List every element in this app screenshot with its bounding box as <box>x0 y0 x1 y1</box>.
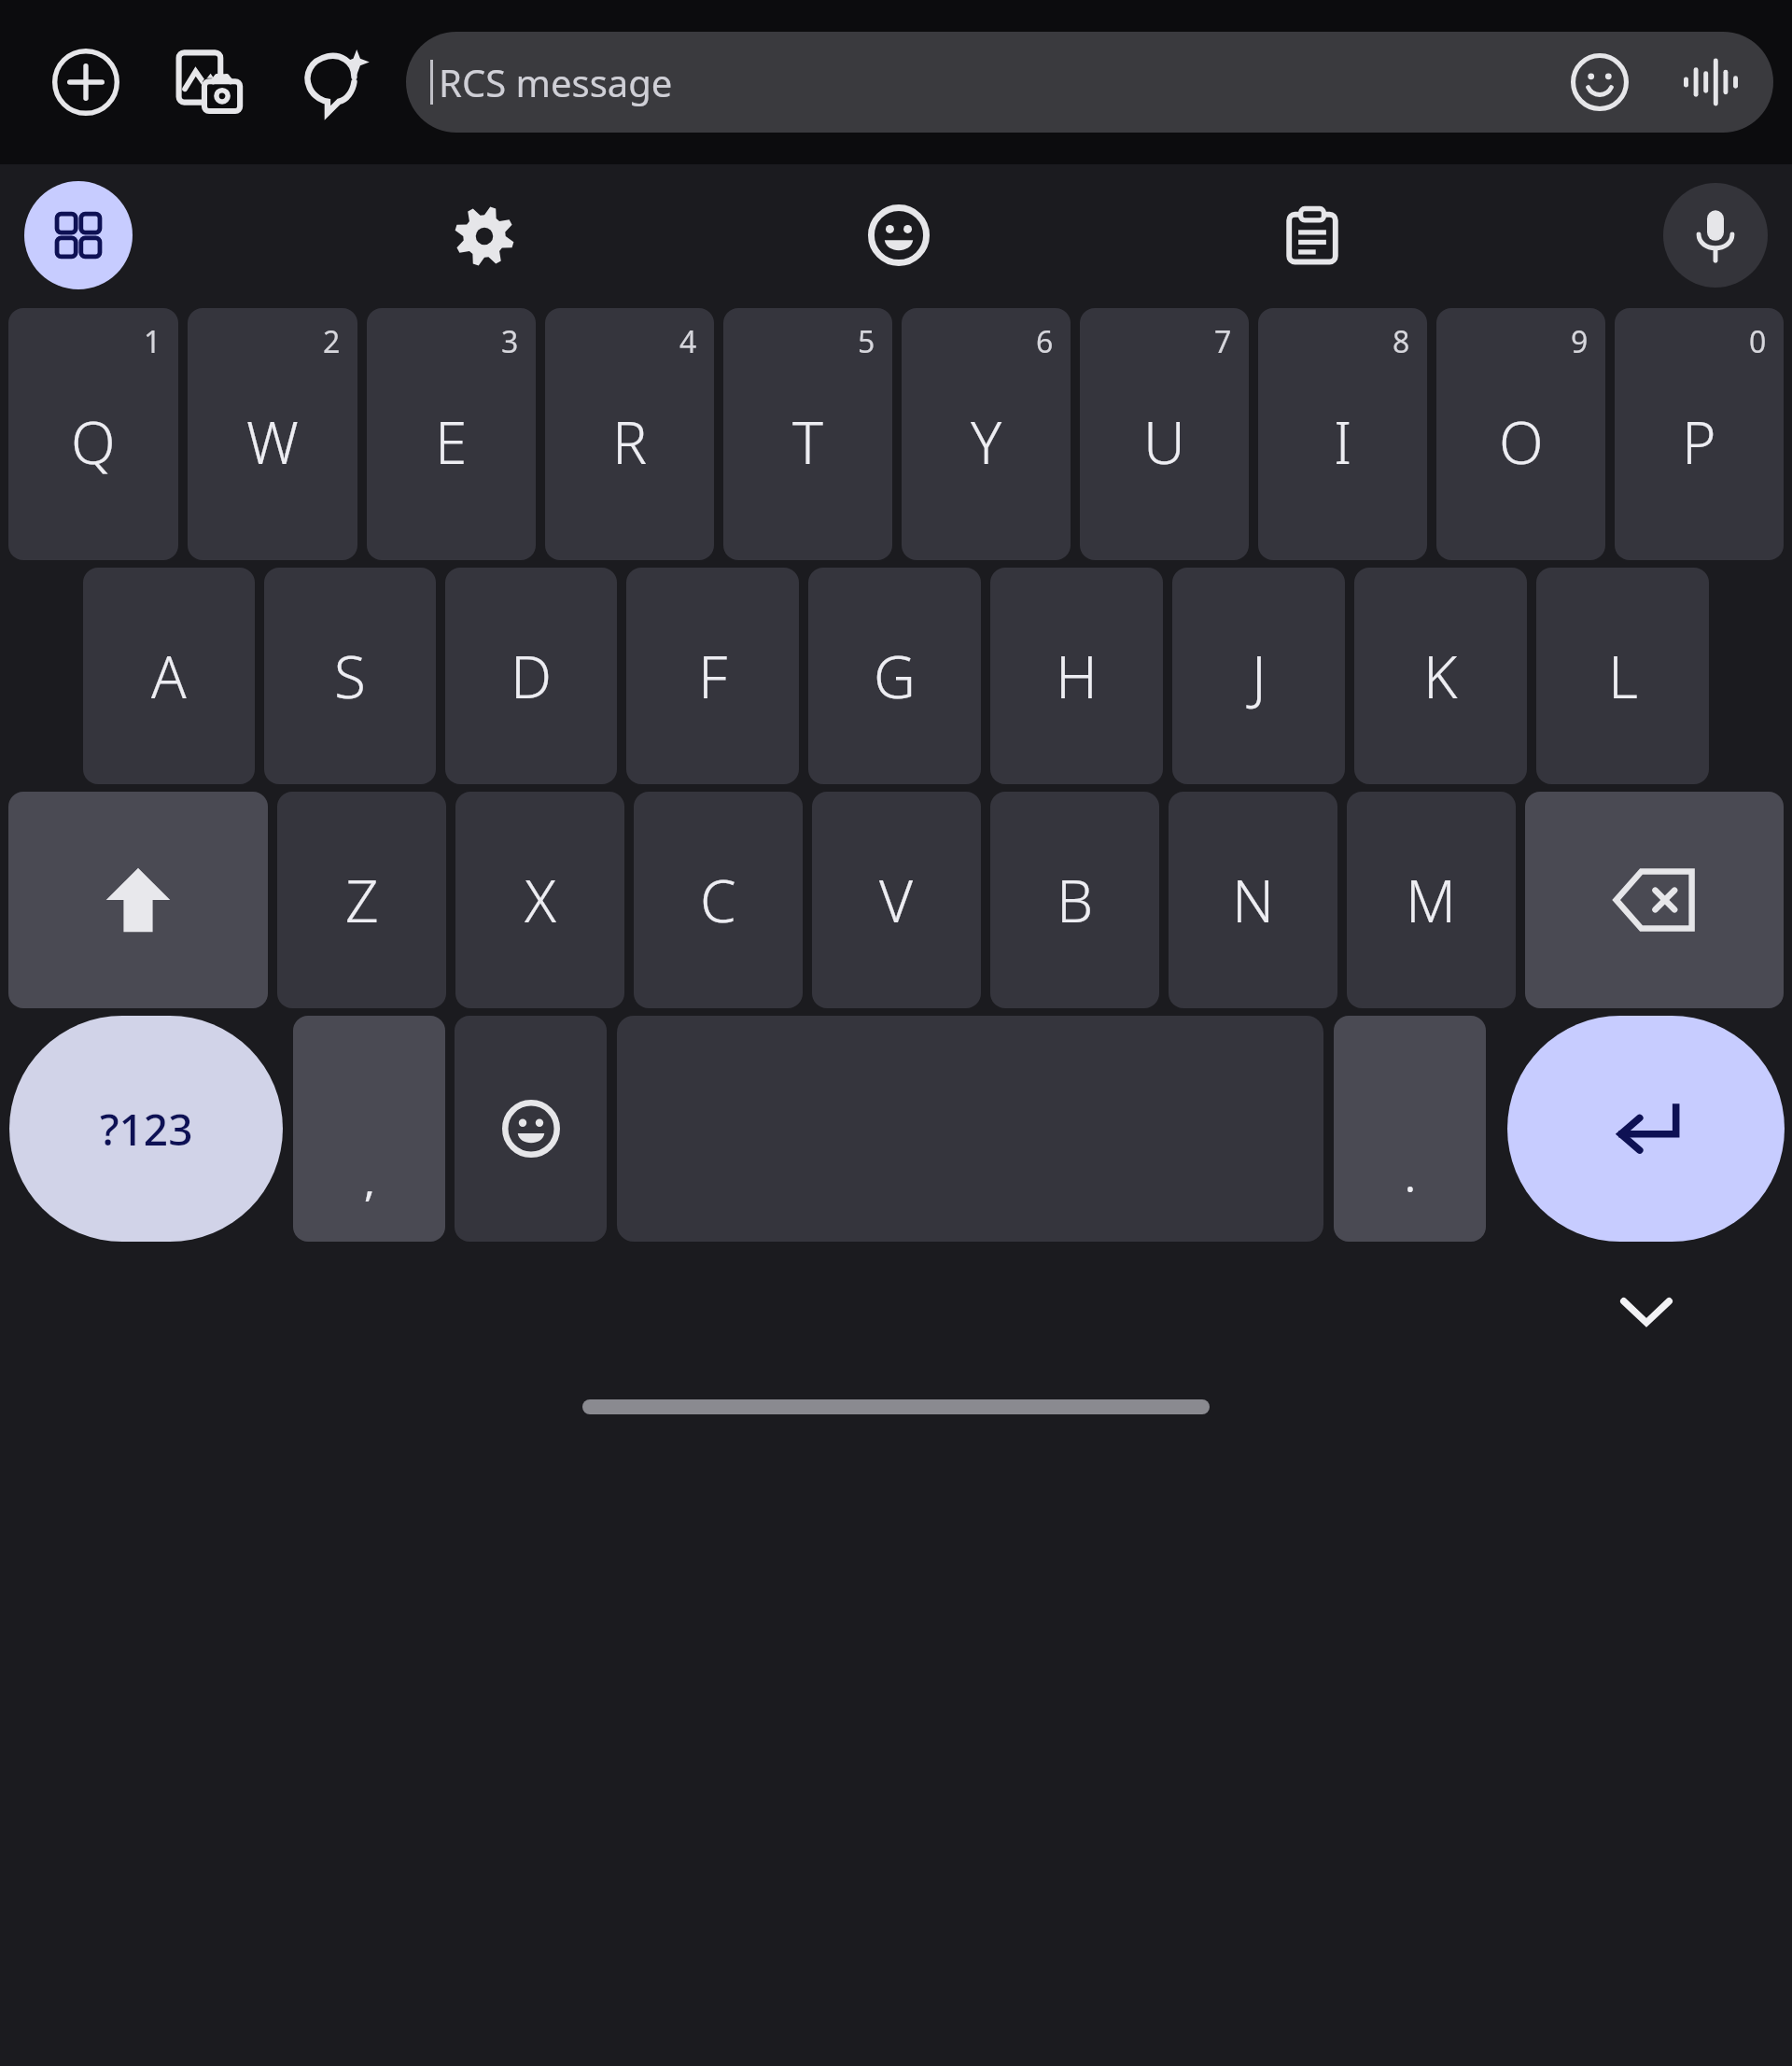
button[interactable]: H <box>990 568 1163 784</box>
staticText: . <box>1405 1148 1416 1204</box>
staticText: Y <box>971 402 1002 481</box>
staticText: X <box>525 861 556 939</box>
staticText: 9 <box>1571 321 1589 362</box>
button[interactable]: S <box>264 568 436 784</box>
button[interactable]: A <box>83 568 255 784</box>
staticText: 2 <box>323 321 341 362</box>
staticText: E <box>435 402 468 481</box>
staticText: S <box>334 637 366 715</box>
staticText: O <box>1499 402 1544 481</box>
button[interactable]: , <box>293 1016 445 1242</box>
staticText: 7 <box>1214 321 1232 362</box>
staticText: Q <box>71 402 116 481</box>
button[interactable]: Insert emoji <box>1555 37 1645 127</box>
staticText: R <box>612 402 648 481</box>
staticText: K <box>1423 637 1458 715</box>
staticText: L <box>1608 637 1638 715</box>
staticText: T <box>792 402 823 481</box>
staticText: P <box>1682 402 1716 481</box>
staticText: 3 <box>501 321 519 362</box>
button[interactable]: Emoji <box>851 188 946 283</box>
button[interactable]: 9 <box>1436 308 1605 560</box>
button[interactable]: Shift <box>8 792 268 1008</box>
staticText: , <box>364 1152 375 1208</box>
button[interactable]: Add attachment <box>34 30 138 134</box>
button[interactable]: L <box>1536 568 1709 784</box>
button[interactable]: Smart reply <box>282 34 380 132</box>
button[interactable]: D <box>445 568 617 784</box>
button[interactable]: Hide keyboard <box>1602 1266 1691 1356</box>
button[interactable]: Settings <box>438 190 530 282</box>
staticText: M <box>1406 861 1457 939</box>
staticText: F <box>698 637 728 715</box>
button[interactable]: 4 <box>545 308 714 560</box>
button[interactable]: . <box>1334 1016 1486 1242</box>
staticText: G <box>874 637 916 715</box>
button[interactable]: G <box>808 568 981 784</box>
staticText: Z <box>345 861 379 939</box>
button[interactable]: Voice message <box>1669 40 1753 124</box>
button[interactable]: Gallery camera <box>157 30 261 134</box>
button[interactable]: K <box>1354 568 1527 784</box>
button[interactable]: RCS message <box>406 32 1773 133</box>
staticText: J <box>1252 637 1267 715</box>
button[interactable]: 1 <box>8 308 178 560</box>
staticText: H <box>1056 637 1098 715</box>
button[interactable]: F <box>626 568 799 784</box>
button[interactable]: 6 <box>902 308 1071 560</box>
staticText: V <box>879 861 914 939</box>
button[interactable]: X <box>455 792 624 1008</box>
staticText: W <box>246 402 299 481</box>
staticText: C <box>700 861 736 939</box>
button[interactable]: B <box>990 792 1159 1008</box>
button[interactable]: N <box>1169 792 1337 1008</box>
staticText: D <box>511 637 553 715</box>
staticText: 1 <box>144 321 161 362</box>
button[interactable]: 8 <box>1258 308 1427 560</box>
button[interactable]: Clipboard <box>1267 190 1357 280</box>
button[interactable]: 2 <box>188 308 357 560</box>
button[interactable]: ?123 <box>9 1016 283 1242</box>
button[interactable]: V <box>812 792 981 1008</box>
staticText: B <box>1057 861 1094 939</box>
staticText: RCS message <box>439 57 673 107</box>
button[interactable]: J <box>1172 568 1345 784</box>
button[interactable]: Keyboard modes <box>24 181 133 289</box>
staticText: 8 <box>1393 321 1410 362</box>
staticText: U <box>1143 402 1185 481</box>
staticText: A <box>151 637 187 715</box>
staticText: 4 <box>679 321 697 362</box>
staticText: N <box>1232 861 1275 939</box>
button[interactable]: Voice input <box>1663 183 1768 288</box>
button[interactable]: 7 <box>1080 308 1249 560</box>
button[interactable]: Enter <box>1507 1016 1785 1242</box>
staticText: I <box>1334 402 1352 481</box>
staticText: ?123 <box>100 1100 193 1159</box>
button[interactable]: Emoji <box>455 1016 607 1242</box>
button[interactable]: Backspace <box>1525 792 1784 1008</box>
staticText: 6 <box>1036 321 1054 362</box>
button[interactable]: 5 <box>723 308 892 560</box>
staticText: 0 <box>1749 321 1767 362</box>
button[interactable]: C <box>634 792 803 1008</box>
button[interactable]: 3 <box>367 308 536 560</box>
button[interactable]: M <box>1347 792 1516 1008</box>
button[interactable]: 0 <box>1615 308 1784 560</box>
button[interactable]: Z <box>277 792 446 1008</box>
staticText: 5 <box>858 321 875 362</box>
